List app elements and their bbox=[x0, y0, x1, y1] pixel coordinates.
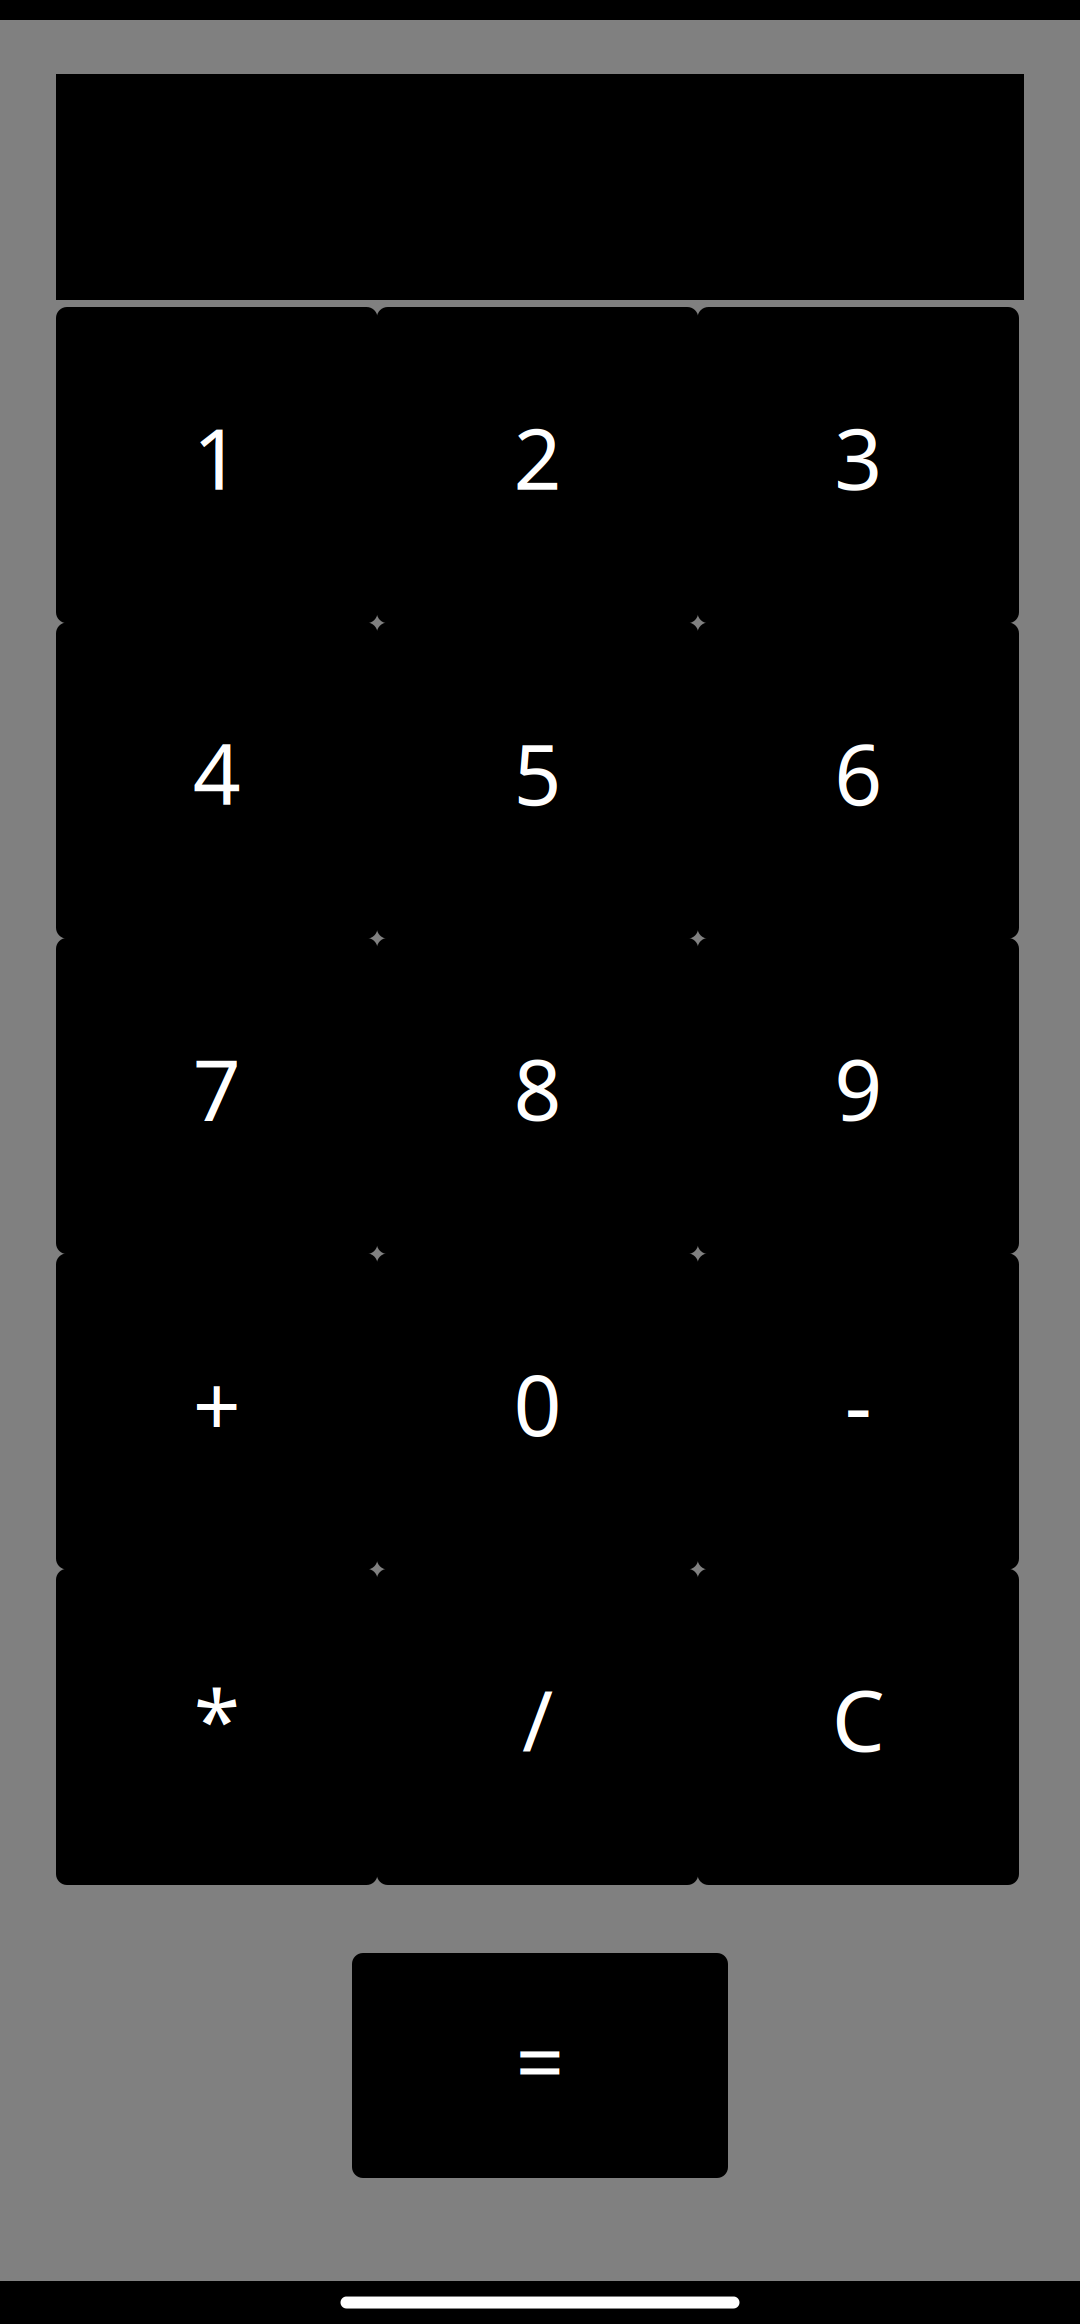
button[interactable]: 5 bbox=[377, 622, 698, 939]
staticText: 7 bbox=[193, 1032, 241, 1144]
button[interactable]: Multiply bbox=[56, 1569, 377, 1885]
button[interactable]: Clear bbox=[697, 1569, 1019, 1885]
staticText: 2 bbox=[513, 401, 561, 513]
button[interactable]: 7 bbox=[56, 938, 377, 1254]
staticText: 0 bbox=[513, 1348, 561, 1459]
staticText: 9 bbox=[834, 1032, 882, 1144]
staticText: * bbox=[194, 1663, 240, 1775]
staticText: / bbox=[522, 1663, 553, 1775]
staticText: = bbox=[515, 2004, 564, 2117]
button[interactable]: 1 bbox=[56, 307, 377, 623]
staticText: 6 bbox=[834, 717, 882, 828]
button[interactable]: Add bbox=[56, 1253, 377, 1569]
staticText: C bbox=[832, 1663, 885, 1775]
button[interactable]: Divide bbox=[377, 1569, 698, 1885]
button[interactable]: 8 bbox=[377, 938, 698, 1254]
button[interactable]: 4 bbox=[56, 622, 377, 939]
staticText: + bbox=[193, 1348, 241, 1459]
staticText: 4 bbox=[193, 717, 241, 828]
staticText: 8 bbox=[513, 1032, 561, 1144]
staticText: 5 bbox=[513, 717, 561, 828]
button[interactable]: 3 bbox=[697, 307, 1019, 623]
staticText: 3 bbox=[834, 401, 882, 513]
staticText: - bbox=[845, 1348, 872, 1459]
button[interactable]: 9 bbox=[697, 938, 1019, 1254]
button[interactable]: 2 bbox=[377, 307, 698, 623]
staticText: 1 bbox=[193, 401, 241, 513]
button[interactable]: 0 bbox=[377, 1253, 698, 1569]
button[interactable]: 6 bbox=[697, 622, 1019, 939]
button[interactable]: Subtract bbox=[697, 1253, 1019, 1569]
button[interactable]: Equals bbox=[352, 1953, 728, 2178]
